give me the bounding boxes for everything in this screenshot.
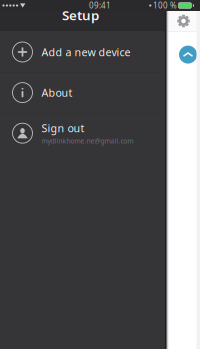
staticText: Sign out [41,121,84,135]
staticText: About [41,85,72,100]
button[interactable]: Add a new device [0,32,165,72]
staticText: 100 % [153,0,177,11]
button[interactable]: Sign out [0,113,165,153]
staticText: Add a new device [41,45,130,59]
button[interactable]: Settings [170,11,196,31]
staticText: mydlinkhome.ne@gmail.com [41,137,133,145]
button[interactable]: Collapse [177,44,198,65]
staticText: 09:41 [89,0,111,11]
button[interactable]: About [0,73,165,113]
staticText: Setup [62,6,99,24]
